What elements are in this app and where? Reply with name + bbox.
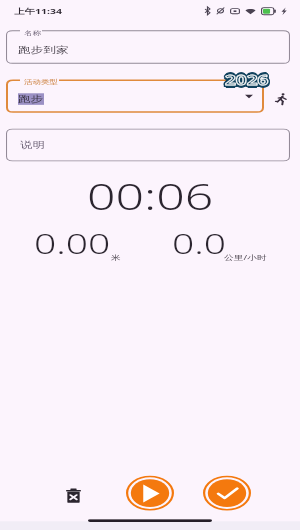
staticText: 2026 — [224, 73, 268, 92]
staticText: 2026 — [225, 69, 269, 88]
staticText: 2026 — [225, 71, 269, 90]
button[interactable]: 说明 — [6, 129, 290, 161]
staticText: 2026 — [227, 70, 271, 89]
button[interactable]: 活动类型 — [6, 79, 264, 113]
staticText: 2026 — [226, 69, 270, 87]
staticText: 2026 — [226, 70, 270, 89]
button[interactable]: Activity type icon — [270, 91, 292, 107]
staticText: 2026 — [225, 68, 269, 87]
staticText: 2026 — [223, 71, 267, 90]
staticText: 2026 — [226, 73, 270, 92]
staticText: 2026 — [225, 73, 269, 92]
staticText: 2026 — [224, 72, 268, 91]
staticText: 名称 — [24, 29, 41, 37]
button[interactable]: Finish — [203, 476, 251, 510]
staticText: 2026 — [225, 74, 269, 93]
staticText: 2026 — [226, 69, 270, 87]
staticText: 2026 — [225, 72, 269, 90]
staticText: 2026 — [227, 69, 271, 88]
staticText: 2026 — [226, 72, 270, 91]
staticText: 2026 — [227, 71, 271, 90]
staticText: 2026 — [224, 70, 268, 89]
staticText: 2026 — [226, 73, 270, 92]
staticText: 2026 — [224, 72, 268, 90]
staticText: 2026 — [223, 71, 267, 90]
staticText: 2026 — [226, 71, 270, 90]
staticText: 说明 — [20, 139, 45, 151]
staticText: 2026 — [224, 69, 268, 88]
staticText: 活动类型 — [24, 78, 58, 86]
staticText: 2026 — [227, 72, 271, 90]
staticText: 2026 — [225, 71, 269, 90]
button[interactable]: 名称 — [6, 30, 290, 64]
staticText: 2026 — [225, 69, 269, 87]
staticText: 2026 — [226, 71, 270, 90]
staticText: 2026 — [226, 72, 270, 90]
staticText: 2026 — [224, 69, 268, 87]
staticText: 0.0 — [172, 223, 227, 262]
staticText: 2026 — [227, 72, 271, 91]
staticText: 跑步 — [18, 93, 44, 105]
staticText: 2026 — [224, 71, 268, 90]
staticText: 2026 — [223, 72, 267, 90]
staticText: 2026 — [224, 69, 268, 87]
staticText: 2026 — [226, 72, 270, 91]
staticText: 跑步到家 — [18, 44, 69, 56]
staticText: 2026 — [226, 69, 270, 88]
staticText: 2026 — [224, 73, 268, 92]
staticText: 2026 — [224, 72, 268, 91]
button[interactable]: Delete — [58, 481, 88, 510]
staticText: 2026 — [227, 71, 271, 90]
staticText: 0.00 — [34, 223, 111, 262]
staticText: 2026 — [226, 69, 270, 88]
staticText: 2026 — [226, 72, 270, 90]
staticText: 2026 — [224, 71, 268, 90]
staticText: 2026 — [225, 72, 269, 91]
staticText: 2026 — [223, 69, 267, 88]
staticText: 2026 — [223, 72, 267, 91]
staticText: 2026 — [224, 69, 268, 88]
staticText: 2026 — [225, 70, 269, 89]
staticText: 米 — [111, 253, 121, 262]
staticText: 上午11:34 — [14, 6, 62, 16]
staticText: 公里/小时 — [224, 253, 267, 262]
staticText: 2026 — [226, 70, 270, 89]
staticText: 2026 — [224, 70, 268, 89]
button[interactable]: Start — [126, 476, 174, 510]
staticText: 2026 — [223, 70, 267, 89]
staticText: 2026 — [224, 72, 268, 90]
staticText: 00:06 — [87, 172, 214, 215]
